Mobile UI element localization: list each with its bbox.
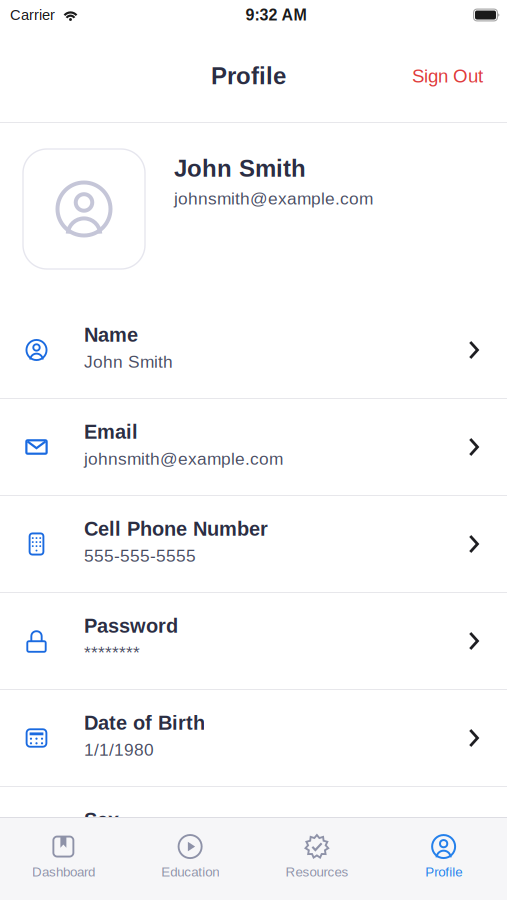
button[interactable]: Education (127, 823, 254, 895)
button[interactable]: Date of Birth (0, 690, 507, 787)
staticText: Profile (425, 865, 462, 879)
button[interactable]: Password (0, 593, 507, 690)
staticText: Dashboard (32, 865, 95, 879)
staticText: 555-555-5555 (84, 546, 196, 565)
staticText: Resources (285, 865, 348, 879)
staticText: Sign Out (412, 66, 483, 86)
button[interactable]: Email (0, 399, 507, 496)
staticText: Sex (84, 809, 119, 831)
staticText: Name (84, 324, 138, 346)
button[interactable]: Resources (253, 823, 380, 895)
staticText: Education (161, 865, 219, 879)
staticText: Password (84, 615, 178, 637)
staticText: Profile (211, 63, 286, 89)
staticText: John Smith (174, 155, 306, 182)
button[interactable]: Sex (0, 787, 507, 884)
staticText: ******** (84, 643, 140, 662)
staticText: 9:32 AM (245, 6, 306, 24)
button[interactable]: Name (0, 302, 507, 399)
button[interactable]: Profile (380, 823, 507, 895)
staticText: Date of Birth (84, 712, 205, 734)
staticText: Cell Phone Number (84, 518, 268, 540)
staticText: johnsmith@example.com (174, 189, 373, 208)
staticText: Email (84, 421, 138, 443)
staticText: Carrier (10, 7, 55, 23)
staticText: 1/1/1980 (84, 740, 154, 759)
button[interactable]: Dashboard (0, 823, 127, 895)
button[interactable]: Sign Out (398, 56, 497, 96)
staticText: johnsmith@example.com (84, 449, 283, 468)
staticText: John Smith (84, 352, 173, 371)
button[interactable]: Cell Phone Number (0, 496, 507, 593)
